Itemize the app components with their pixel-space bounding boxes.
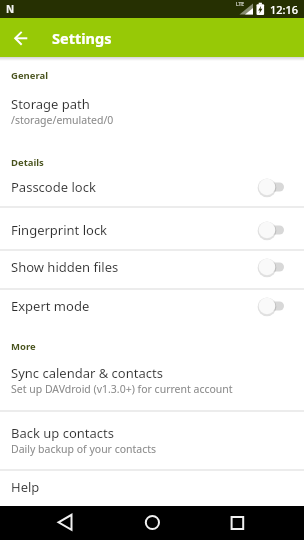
button[interactable] bbox=[0, 207, 304, 250]
button[interactable] bbox=[131, 506, 173, 540]
staticText: Help bbox=[11, 478, 40, 496]
button[interactable] bbox=[0, 167, 304, 207]
button[interactable] bbox=[0, 411, 304, 470]
button[interactable] bbox=[0, 289, 304, 329]
button[interactable] bbox=[0, 250, 304, 290]
staticText: Fingerprint lock bbox=[11, 221, 108, 239]
staticText: Show hidden files bbox=[11, 258, 119, 276]
staticText: Daily backup of your contacts bbox=[11, 442, 157, 456]
button[interactable] bbox=[44, 506, 86, 540]
staticText: Passcode lock bbox=[11, 178, 96, 196]
staticText: Set up DAVdroid (v1.3.0+) for current ac… bbox=[11, 382, 233, 396]
button[interactable] bbox=[0, 18, 42, 57]
staticText: Back up contacts bbox=[11, 424, 114, 442]
staticText: Sync calendar & contacts bbox=[11, 364, 163, 382]
staticText: Settings bbox=[52, 28, 112, 48]
staticText: LTE bbox=[236, 1, 245, 8]
staticText: 12:16 bbox=[270, 2, 299, 17]
button[interactable] bbox=[216, 506, 258, 540]
staticText: /storage/emulated/0 bbox=[11, 113, 114, 127]
button[interactable] bbox=[0, 470, 304, 506]
staticText: N bbox=[6, 2, 15, 16]
staticText: Expert mode bbox=[11, 297, 90, 315]
button[interactable] bbox=[0, 84, 304, 138]
staticText: Storage path bbox=[11, 95, 90, 113]
button[interactable] bbox=[0, 355, 304, 411]
staticText: General bbox=[11, 69, 48, 82]
staticText: More bbox=[11, 340, 36, 353]
staticText: Details bbox=[11, 156, 44, 169]
